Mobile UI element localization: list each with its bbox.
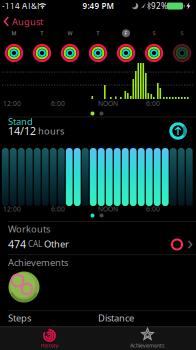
staticText: M <box>11 30 16 37</box>
staticText: CAL <box>28 239 42 249</box>
button[interactable] <box>0 231 196 257</box>
button[interactable] <box>56 27 84 67</box>
staticText: 6:00 <box>146 205 160 213</box>
staticText: 9:49 PM <box>82 1 113 11</box>
button[interactable] <box>0 310 98 325</box>
staticText: S <box>152 30 155 37</box>
staticText: Achievements <box>130 342 165 349</box>
staticText: 6:00 <box>51 99 65 108</box>
staticText: Other <box>44 238 69 250</box>
staticText: Workouts <box>8 223 50 235</box>
staticText: Steps <box>8 312 31 324</box>
staticText: History <box>40 342 58 349</box>
staticText: W <box>67 30 72 37</box>
button[interactable] <box>7 270 41 304</box>
staticText: -114 AT&T <box>2 1 40 11</box>
staticText: 474 <box>8 237 26 251</box>
staticText: T <box>40 30 43 37</box>
staticText: Stand <box>8 115 33 127</box>
staticText: 12:00 <box>3 99 21 108</box>
staticText: NOON <box>98 99 118 108</box>
staticText: Achievements <box>8 256 68 269</box>
staticText: T <box>96 30 99 37</box>
button[interactable] <box>98 310 196 325</box>
button[interactable] <box>168 27 196 67</box>
staticText: F <box>124 30 127 37</box>
staticText: 6:00 <box>146 99 160 108</box>
button[interactable] <box>28 27 56 67</box>
button[interactable] <box>166 119 190 143</box>
button[interactable] <box>112 27 140 67</box>
staticText: 12:00 <box>3 205 21 213</box>
button[interactable] <box>0 27 28 67</box>
button[interactable] <box>84 27 112 67</box>
button[interactable] <box>0 326 98 350</box>
staticText: NOON <box>98 205 118 213</box>
staticText: 6:00 <box>51 205 65 213</box>
button[interactable] <box>140 27 168 67</box>
staticText: 14/12 <box>8 124 36 138</box>
button[interactable] <box>98 326 196 350</box>
button[interactable] <box>0 11 76 31</box>
staticText: 92% <box>151 1 168 11</box>
staticText: August <box>12 15 43 28</box>
staticText: hours <box>38 125 64 137</box>
staticText: Distance <box>98 312 134 324</box>
staticText: S <box>180 30 183 37</box>
